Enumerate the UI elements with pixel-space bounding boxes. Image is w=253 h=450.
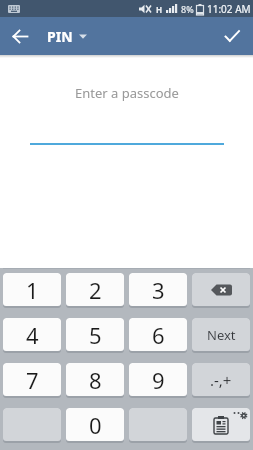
staticText: 2	[89, 275, 102, 305]
button[interactable]: 4	[3, 318, 61, 351]
button[interactable]	[211, 17, 253, 55]
button[interactable]: 9	[129, 363, 187, 396]
button[interactable]: 0	[66, 408, 124, 441]
staticText: .-,+	[210, 370, 232, 390]
button[interactable]: 2	[66, 273, 124, 306]
button[interactable]: PIN	[47, 27, 87, 46]
staticText: 4	[26, 320, 39, 350]
button[interactable]: 7	[3, 363, 61, 396]
staticText: 5	[89, 320, 102, 350]
staticText: PIN	[47, 27, 73, 46]
button[interactable]: .-,+	[192, 363, 250, 396]
staticText: 0	[89, 410, 102, 440]
button[interactable]	[192, 408, 250, 441]
staticText: 1	[26, 275, 39, 305]
button[interactable]: 5	[66, 318, 124, 351]
button[interactable]	[192, 273, 250, 306]
button[interactable]	[0, 17, 40, 55]
staticText: 9	[152, 365, 165, 395]
staticText: 3	[152, 275, 165, 305]
staticText: 8	[89, 365, 102, 395]
button[interactable]: 3	[129, 273, 187, 306]
staticText: Next	[207, 326, 236, 344]
staticText: Enter a passcode	[75, 84, 179, 102]
staticText: 11:02 AM	[207, 2, 251, 16]
staticText: 8%	[181, 3, 194, 15]
button[interactable]: 1	[3, 273, 61, 306]
staticText: H	[156, 4, 163, 15]
button[interactable]: 6	[129, 318, 187, 351]
button[interactable]: Next	[192, 318, 250, 351]
staticText: 7	[26, 365, 39, 395]
staticText: 6	[152, 320, 165, 350]
button[interactable]: 8	[66, 363, 124, 396]
